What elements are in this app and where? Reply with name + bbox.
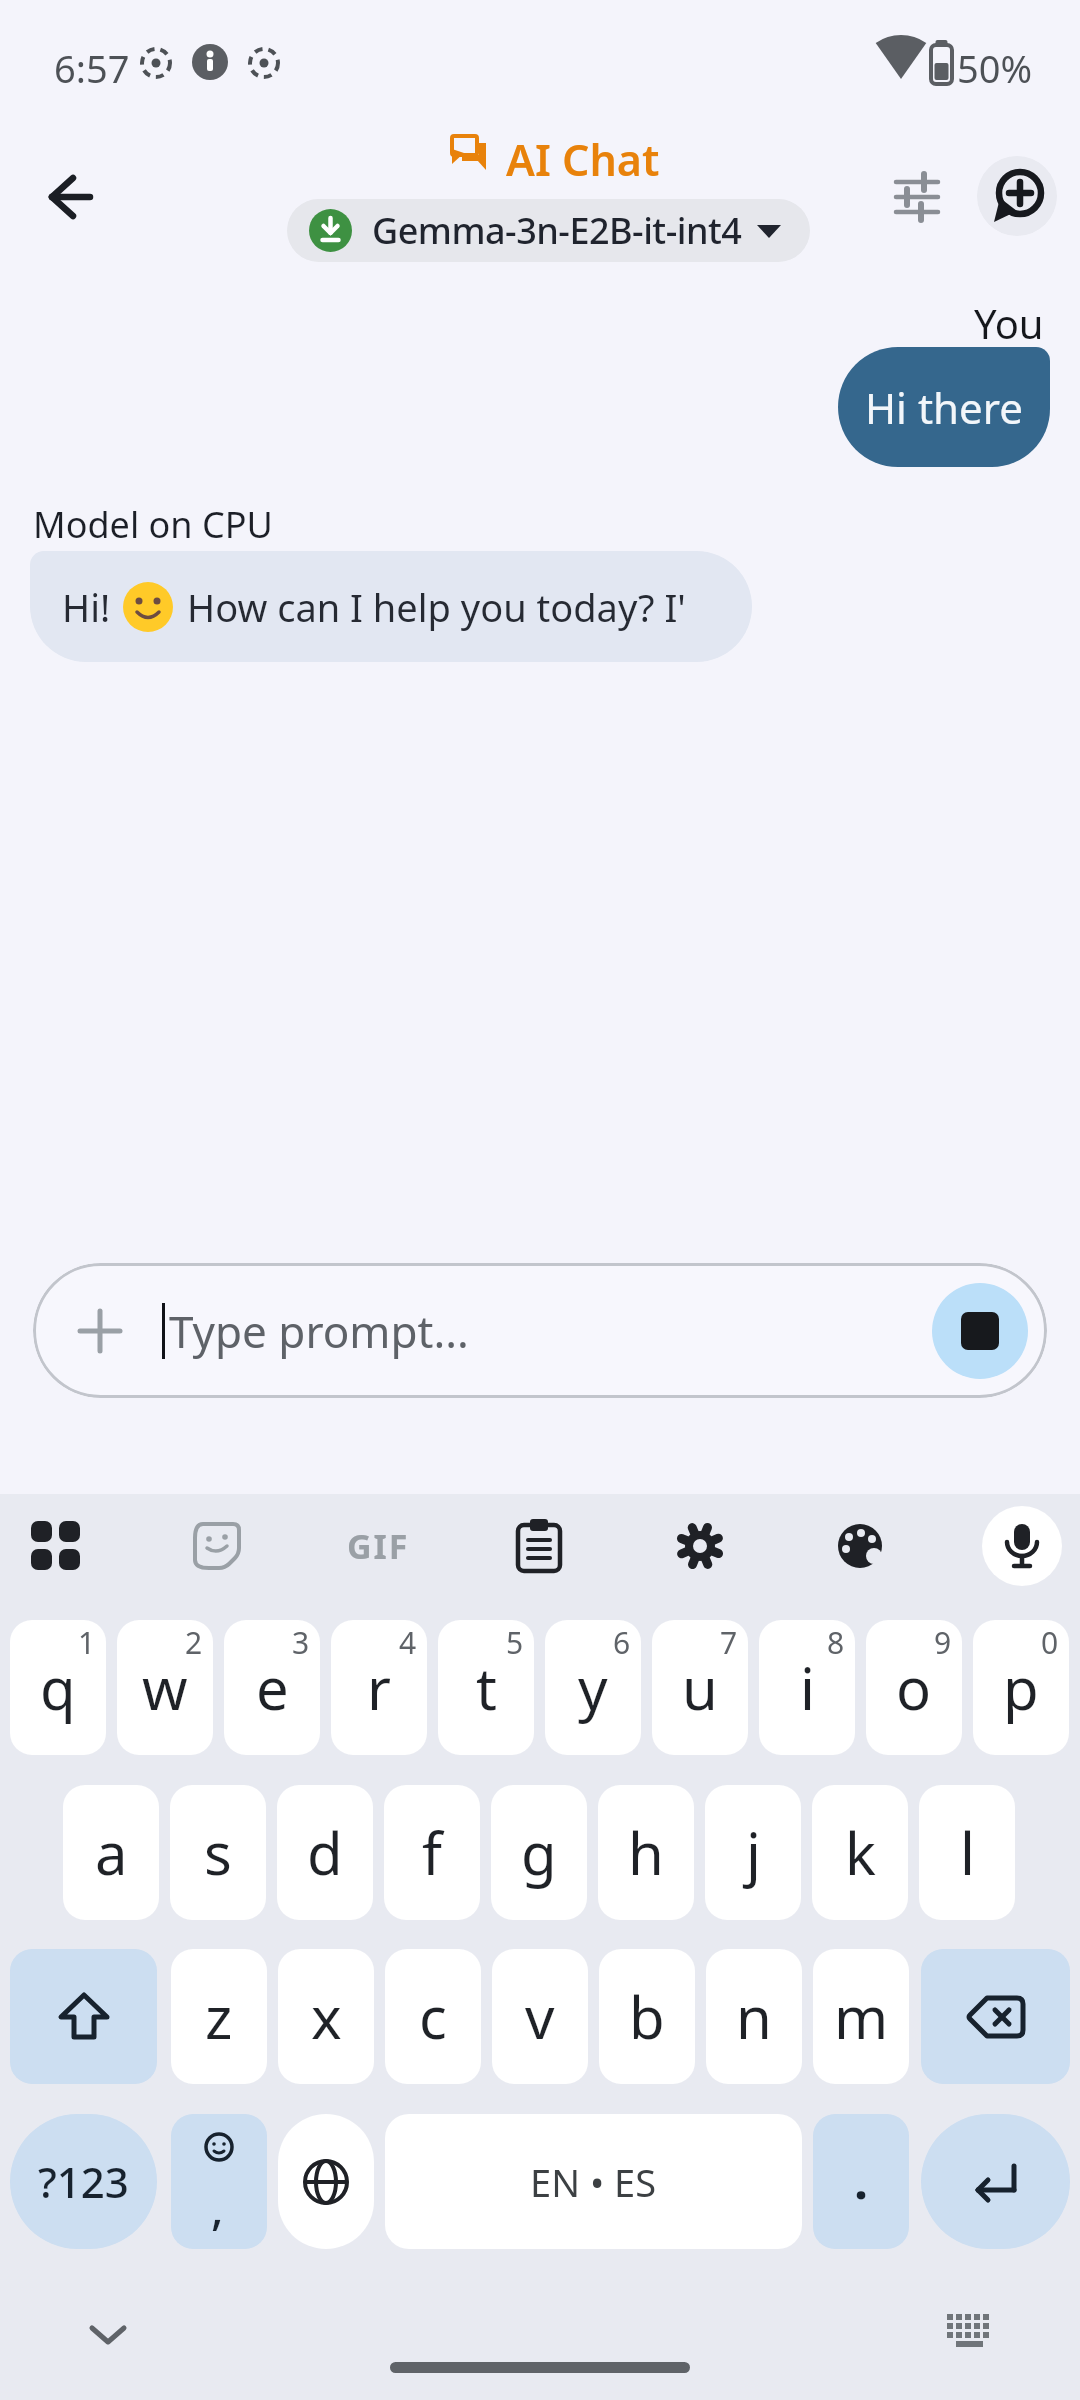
button[interactable]: g [491,1785,587,1920]
staticText: x [311,1977,342,2056]
staticText: c [419,1977,447,2056]
button[interactable]: o [866,1620,962,1755]
button[interactable]: y [545,1620,641,1755]
staticText: . [854,2146,869,2214]
staticText: u [682,1648,718,1727]
button[interactable] [886,166,948,228]
staticText: y [578,1648,608,1727]
staticText: s [204,1813,232,1892]
button[interactable] [278,2114,374,2249]
staticText: How can I help you today? I' [187,581,686,633]
staticText: m [834,1977,889,2056]
button[interactable] [664,1510,736,1582]
button[interactable]: v [492,1949,588,2084]
staticText: Hi! [62,581,111,633]
button[interactable] [977,156,1057,236]
staticText: k [845,1813,876,1892]
button[interactable]: d [277,1785,373,1920]
button[interactable] [932,1283,1028,1379]
staticText: z [205,1977,233,2056]
staticText: 7 [720,1622,738,1663]
button[interactable]: n [706,1949,802,2084]
button[interactable]: e [224,1620,320,1755]
staticText: 6 [613,1622,631,1663]
staticText: g [521,1813,557,1892]
staticText: 1 [78,1622,96,1663]
button[interactable]: h [598,1785,694,1920]
button[interactable]: f [384,1785,480,1920]
staticText: e [256,1648,289,1727]
button[interactable]: z [171,1949,267,2084]
staticText: Hi there [865,379,1023,436]
button[interactable]: GIF [342,1510,414,1582]
staticText: a [95,1813,128,1892]
staticText: w [142,1648,188,1727]
staticText: AI Chat [506,130,660,189]
button[interactable]: u [652,1620,748,1755]
button[interactable]: b [599,1949,695,2084]
staticText: 0 [1041,1622,1059,1663]
staticText: 9 [934,1622,952,1663]
button[interactable] [982,1506,1062,1586]
staticText: 2 [185,1622,203,1663]
staticText: 3 [292,1622,310,1663]
button[interactable]: w [117,1620,213,1755]
button[interactable] [921,1949,1070,2084]
staticText: EN • ES [530,2156,657,2208]
staticText: 50% [957,42,1033,94]
staticText: ?123 [38,2153,129,2210]
staticText: d [307,1813,343,1892]
button[interactable] [921,2114,1070,2249]
staticText: o [896,1648,932,1727]
button[interactable]: ?123 [10,2114,157,2249]
staticText: 8 [827,1622,845,1663]
staticText: Gemma-3n-E2B-it-int4 [372,206,742,255]
button[interactable]: l [919,1785,1015,1920]
staticText: l [960,1813,975,1892]
button[interactable]: a [63,1785,159,1920]
button[interactable]: r [331,1620,427,1755]
staticText: You [974,296,1044,350]
staticText: GIF [347,1523,410,1569]
button[interactable] [503,1510,575,1582]
staticText: t [476,1648,497,1727]
staticText: Model on CPU [33,500,273,549]
button[interactable] [938,2306,1002,2362]
button[interactable]: EN • ES [385,2114,802,2249]
staticText: j [746,1813,761,1892]
staticText: h [628,1813,664,1892]
staticText: b [629,1977,665,2056]
button[interactable] [181,1510,253,1582]
button[interactable]: i [759,1620,855,1755]
button[interactable]: t [438,1620,534,1755]
staticText: , [211,2176,224,2239]
button[interactable]: m [813,1949,909,2084]
button[interactable]: j [705,1785,801,1920]
staticText: p [1003,1648,1039,1727]
button[interactable] [78,2310,138,2360]
button[interactable]: p [973,1620,1069,1755]
button[interactable]: c [385,1949,481,2084]
staticText: 5 [506,1622,524,1663]
button[interactable]: Gemma-3n-E2B-it-int4 [287,199,810,262]
button[interactable]: q [10,1620,106,1755]
staticText: r [367,1648,391,1727]
staticText: v [525,1977,555,2056]
button[interactable]: Type prompt... [33,1263,1047,1398]
staticText: q [40,1648,76,1727]
staticText: f [422,1813,442,1892]
button[interactable]: k [812,1785,908,1920]
button[interactable]: x [278,1949,374,2084]
button[interactable]: . [813,2114,909,2249]
button[interactable] [824,1510,896,1582]
button[interactable]: , [171,2114,267,2249]
button[interactable]: s [170,1785,266,1920]
staticText: n [736,1977,772,2056]
staticText: Type prompt... [169,1301,469,1361]
button[interactable] [40,166,102,228]
staticText: 6:57 [54,42,130,94]
button[interactable] [20,1510,92,1582]
staticText: i [800,1648,815,1727]
staticText: 4 [399,1622,417,1663]
button[interactable] [10,1949,157,2084]
